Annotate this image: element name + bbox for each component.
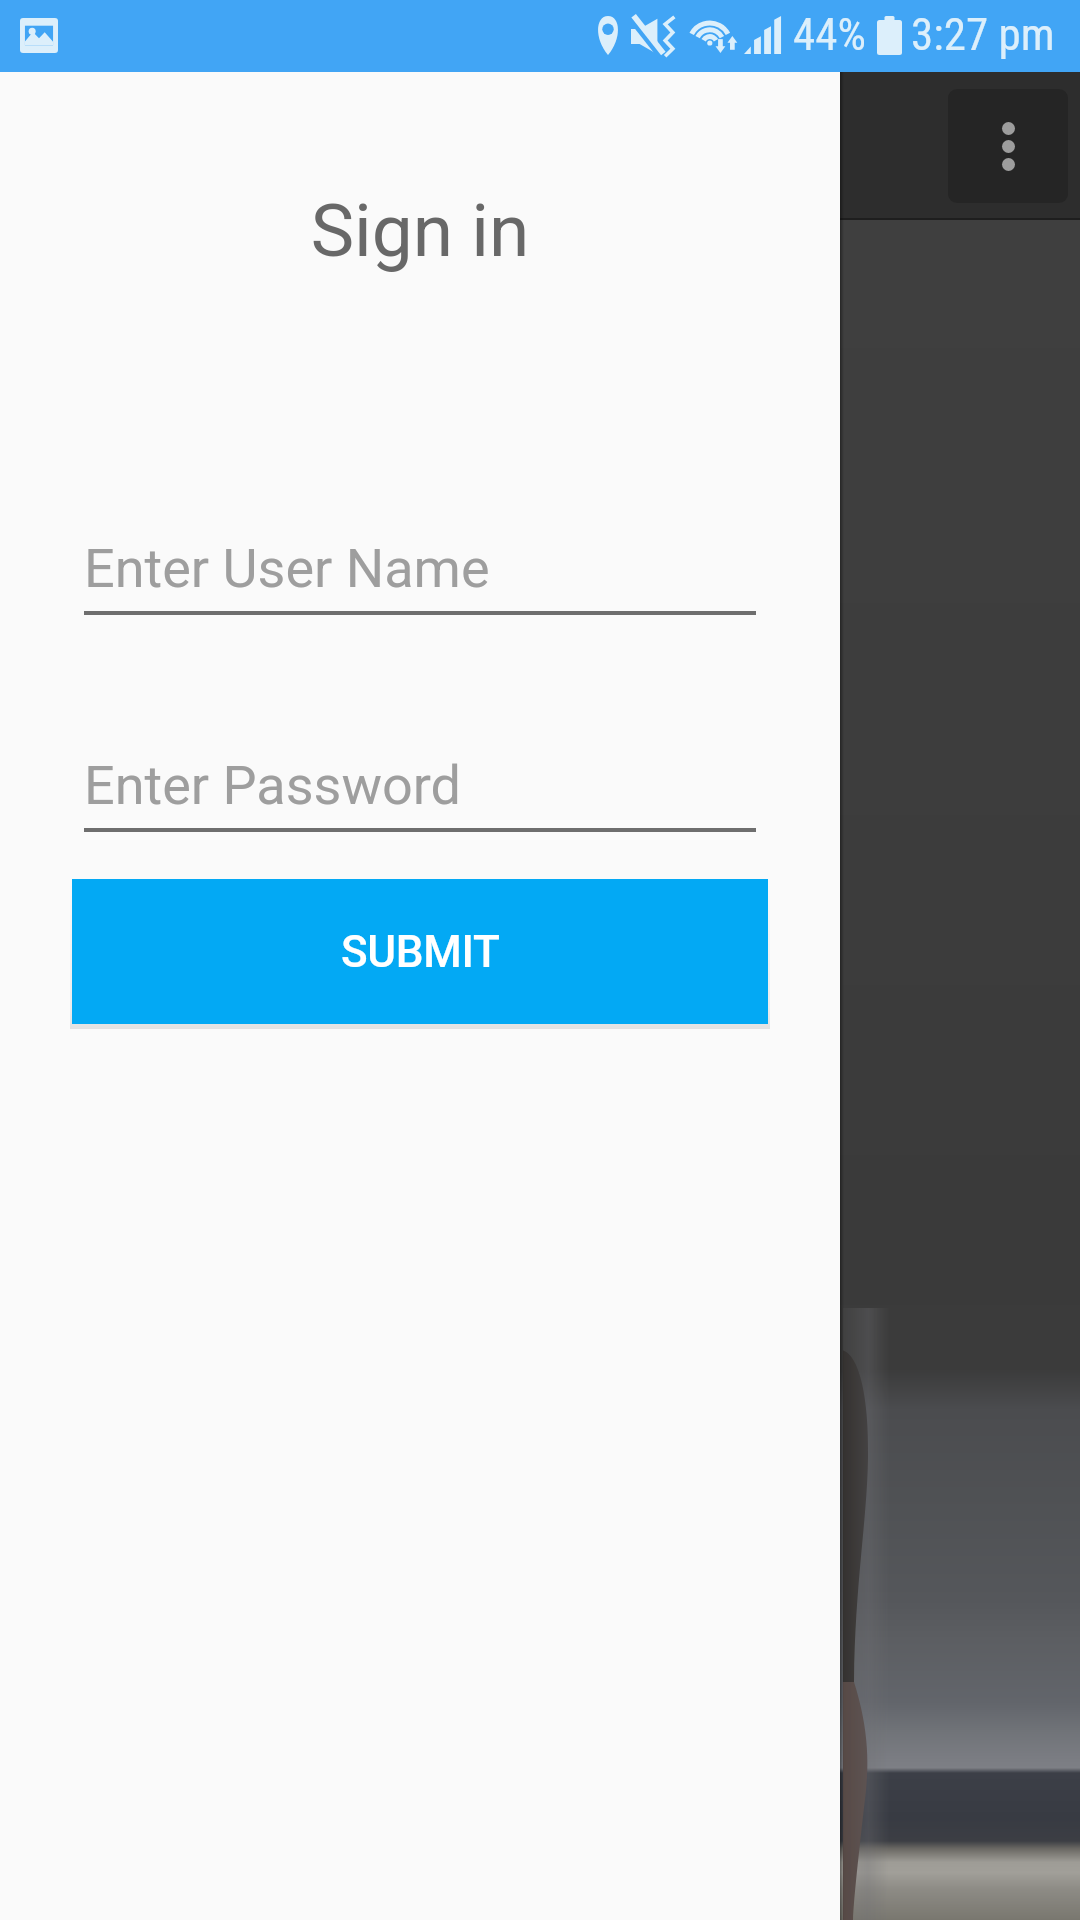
staticText: Sign in	[0, 188, 840, 274]
button[interactable]: Enter Password	[84, 740, 756, 832]
button[interactable]: More options	[948, 89, 1068, 203]
button[interactable]: Enter User Name	[84, 523, 756, 615]
staticText: Enter User Name	[84, 537, 490, 600]
staticText: SUBMIT	[341, 926, 500, 978]
staticText: 3:27 pm	[911, 8, 1055, 61]
button[interactable]: SUBMIT	[72, 879, 768, 1024]
staticText: Enter Password	[84, 754, 462, 817]
staticText: 44%	[793, 8, 866, 61]
